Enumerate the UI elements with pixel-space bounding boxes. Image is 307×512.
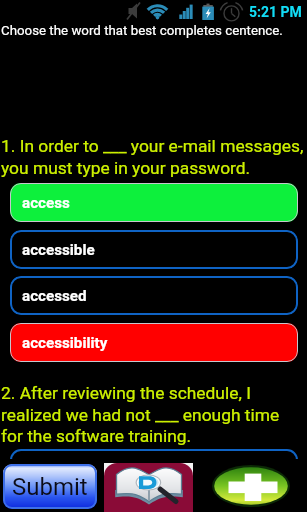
staticText: 2. After reviewing the schedule, I reali… [1, 383, 280, 446]
staticText: access [22, 194, 70, 212]
button[interactable]: accessed [10, 276, 298, 315]
button[interactable]: accessible [10, 230, 298, 269]
staticText: 5:21 PM [249, 4, 302, 20]
button[interactable]: Dictionary [104, 463, 193, 512]
staticText: Choose the word that best completes cent… [1, 23, 283, 39]
button[interactable]: Submit [3, 464, 97, 509]
staticText: accessed [22, 287, 87, 305]
staticText: accessibility [22, 334, 108, 352]
button[interactable]: accessibility [10, 323, 298, 362]
staticText: Submit [12, 473, 88, 501]
staticText: accessible [22, 241, 95, 259]
button[interactable] [10, 449, 298, 488]
staticText: 1. In order to ___ your e-mail messages,… [1, 136, 304, 178]
button[interactable]: Add [212, 465, 290, 507]
button[interactable]: access [10, 183, 298, 222]
